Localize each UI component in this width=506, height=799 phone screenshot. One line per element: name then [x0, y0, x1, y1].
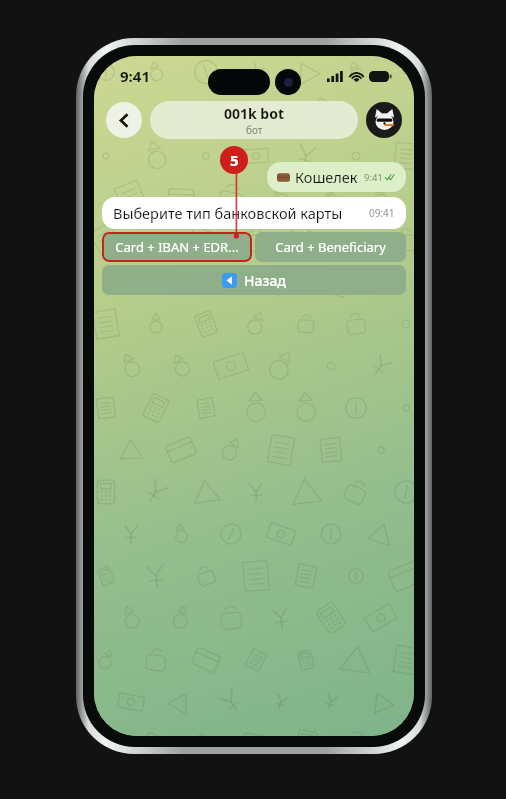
button[interactable]: Кошелек: [267, 162, 406, 192]
staticText: 9:41: [364, 171, 383, 184]
button[interactable]: Card + Beneficiary: [255, 232, 406, 262]
button[interactable]: Back: [106, 102, 142, 138]
staticText: Card + Beneficiary: [275, 238, 386, 256]
button[interactable]: 001k bot: [150, 101, 358, 139]
staticText: Кошелек: [295, 167, 358, 187]
staticText: Назад: [244, 271, 286, 290]
staticText: бот: [246, 123, 263, 137]
staticText: 001k bot: [224, 104, 285, 123]
staticText: 09:41: [369, 206, 395, 220]
staticText: 5: [230, 150, 239, 170]
button[interactable]: Card + IBAN + EDR...: [102, 232, 252, 262]
staticText: Card + IBAN + EDR...: [115, 238, 239, 256]
button[interactable]: Назад: [102, 265, 406, 295]
staticText: Выберите тип банковской карты: [113, 203, 343, 223]
button[interactable]: Chat profile: [366, 102, 402, 138]
staticText: 9:41: [120, 66, 150, 86]
button[interactable]: Выберите тип банковской карты: [102, 197, 406, 229]
